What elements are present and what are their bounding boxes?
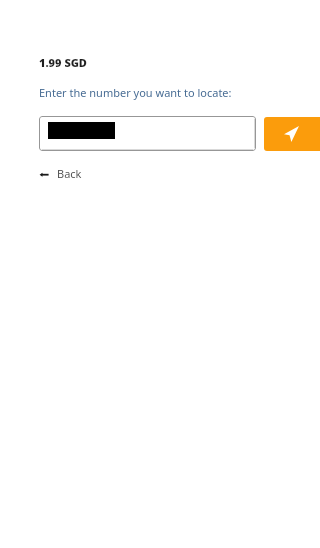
staticText: 1.99 SGD bbox=[39, 55, 87, 70]
staticText: Back bbox=[57, 166, 82, 181]
staticText: Enter the number you want to locate: bbox=[39, 85, 232, 100]
button[interactable]: Back bbox=[39, 166, 82, 181]
button[interactable]: Send bbox=[264, 117, 320, 151]
button[interactable]: Phone number input bbox=[39, 116, 256, 151]
